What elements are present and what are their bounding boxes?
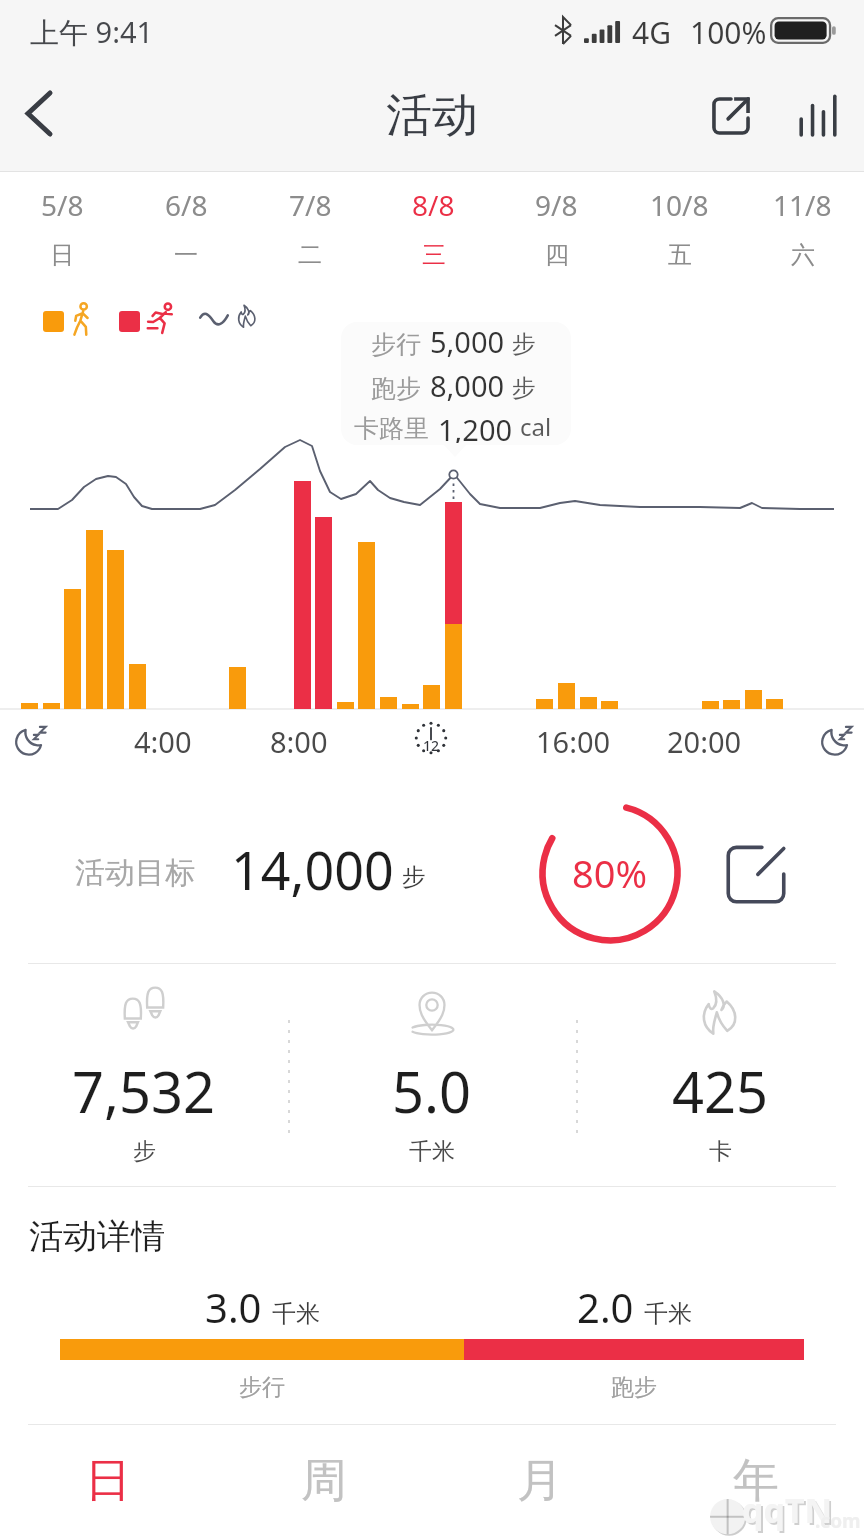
staticText: 步行 bbox=[371, 329, 421, 360]
staticText: 5,000 bbox=[430, 322, 505, 361]
button[interactable]: 9/8 bbox=[495, 176, 618, 280]
staticText: 4:00 bbox=[134, 722, 192, 761]
staticText: 步行 bbox=[239, 1373, 285, 1402]
staticText: 上午 9:41 bbox=[30, 12, 154, 52]
staticText: 步 bbox=[512, 373, 536, 403]
staticText: 跑步 bbox=[371, 373, 421, 404]
staticText: 千米 bbox=[272, 1299, 320, 1329]
staticText: 日 bbox=[50, 240, 74, 270]
button[interactable]: 6/8 bbox=[124, 176, 248, 280]
staticText: 年 bbox=[733, 1452, 779, 1510]
button[interactable]: 10/8 bbox=[618, 176, 741, 280]
staticText: 11/8 bbox=[773, 186, 832, 224]
staticText: 日 bbox=[85, 1452, 131, 1510]
staticText: 4G bbox=[632, 12, 671, 53]
staticText: 16:00 bbox=[536, 722, 611, 761]
staticText: 步 bbox=[133, 1137, 156, 1166]
staticText: 一 bbox=[174, 240, 198, 270]
staticText: 月 bbox=[517, 1452, 563, 1510]
staticText: 1,200 bbox=[438, 410, 513, 445]
button[interactable]: 日 bbox=[0, 1425, 216, 1536]
staticText: 80% bbox=[572, 847, 648, 899]
staticText: 四 bbox=[545, 240, 569, 270]
button[interactable]: 年 bbox=[648, 1425, 864, 1536]
staticText: 425 bbox=[672, 1053, 769, 1129]
staticText: qqTN bbox=[744, 1489, 835, 1535]
button[interactable]: 7/8 bbox=[248, 176, 372, 280]
button[interactable]: Edit goal bbox=[714, 829, 802, 917]
staticText: 12 bbox=[423, 736, 440, 755]
staticText: 6/8 bbox=[165, 186, 208, 224]
staticText: qqTN bbox=[742, 1487, 833, 1533]
staticText: 周 bbox=[301, 1452, 347, 1510]
staticText: cal bbox=[520, 410, 552, 443]
staticText: 卡 bbox=[709, 1137, 732, 1166]
staticText: 二 bbox=[298, 240, 322, 270]
button[interactable]: Back bbox=[8, 82, 70, 144]
staticText: .com bbox=[815, 1508, 861, 1534]
button[interactable]: 8/8 bbox=[372, 176, 495, 280]
button[interactable]: 月 bbox=[432, 1425, 648, 1536]
staticText: 2.0 bbox=[577, 1280, 634, 1334]
staticText: 8,000 bbox=[430, 366, 505, 405]
staticText: 8:00 bbox=[270, 722, 328, 761]
staticText: 步 bbox=[512, 329, 536, 359]
staticText: 步 bbox=[402, 862, 426, 892]
staticText: 活动 bbox=[386, 87, 478, 145]
staticText: 五 bbox=[668, 240, 692, 270]
staticText: 活动详情 bbox=[29, 1215, 165, 1258]
staticText: 六 bbox=[791, 240, 815, 270]
staticText: 千米 bbox=[644, 1299, 692, 1329]
staticText: 跑步 bbox=[611, 1373, 657, 1402]
staticText: 10/8 bbox=[650, 186, 709, 224]
staticText: 7/8 bbox=[289, 186, 332, 224]
button[interactable]: 5/8 bbox=[0, 176, 124, 280]
staticText: 9/8 bbox=[535, 186, 578, 224]
button[interactable]: Share bbox=[697, 82, 765, 150]
button[interactable]: Statistics bbox=[784, 82, 852, 150]
button[interactable]: 周 bbox=[216, 1425, 432, 1536]
staticText: 14,000 bbox=[231, 834, 394, 905]
button[interactable]: 11/8 bbox=[741, 176, 864, 280]
staticText: 千米 bbox=[409, 1137, 455, 1166]
staticText: 5.0 bbox=[392, 1053, 472, 1129]
staticText: 5/8 bbox=[41, 186, 84, 224]
staticText: 8/8 bbox=[412, 186, 455, 224]
staticText: 活动目标 bbox=[75, 854, 195, 892]
staticText: 卡路里 bbox=[354, 413, 429, 444]
staticText: 7,532 bbox=[72, 1053, 216, 1129]
staticText: 3.0 bbox=[205, 1280, 262, 1334]
staticText: 三 bbox=[422, 240, 446, 270]
staticText: 100% bbox=[690, 12, 767, 53]
staticText: 20:00 bbox=[667, 722, 742, 761]
